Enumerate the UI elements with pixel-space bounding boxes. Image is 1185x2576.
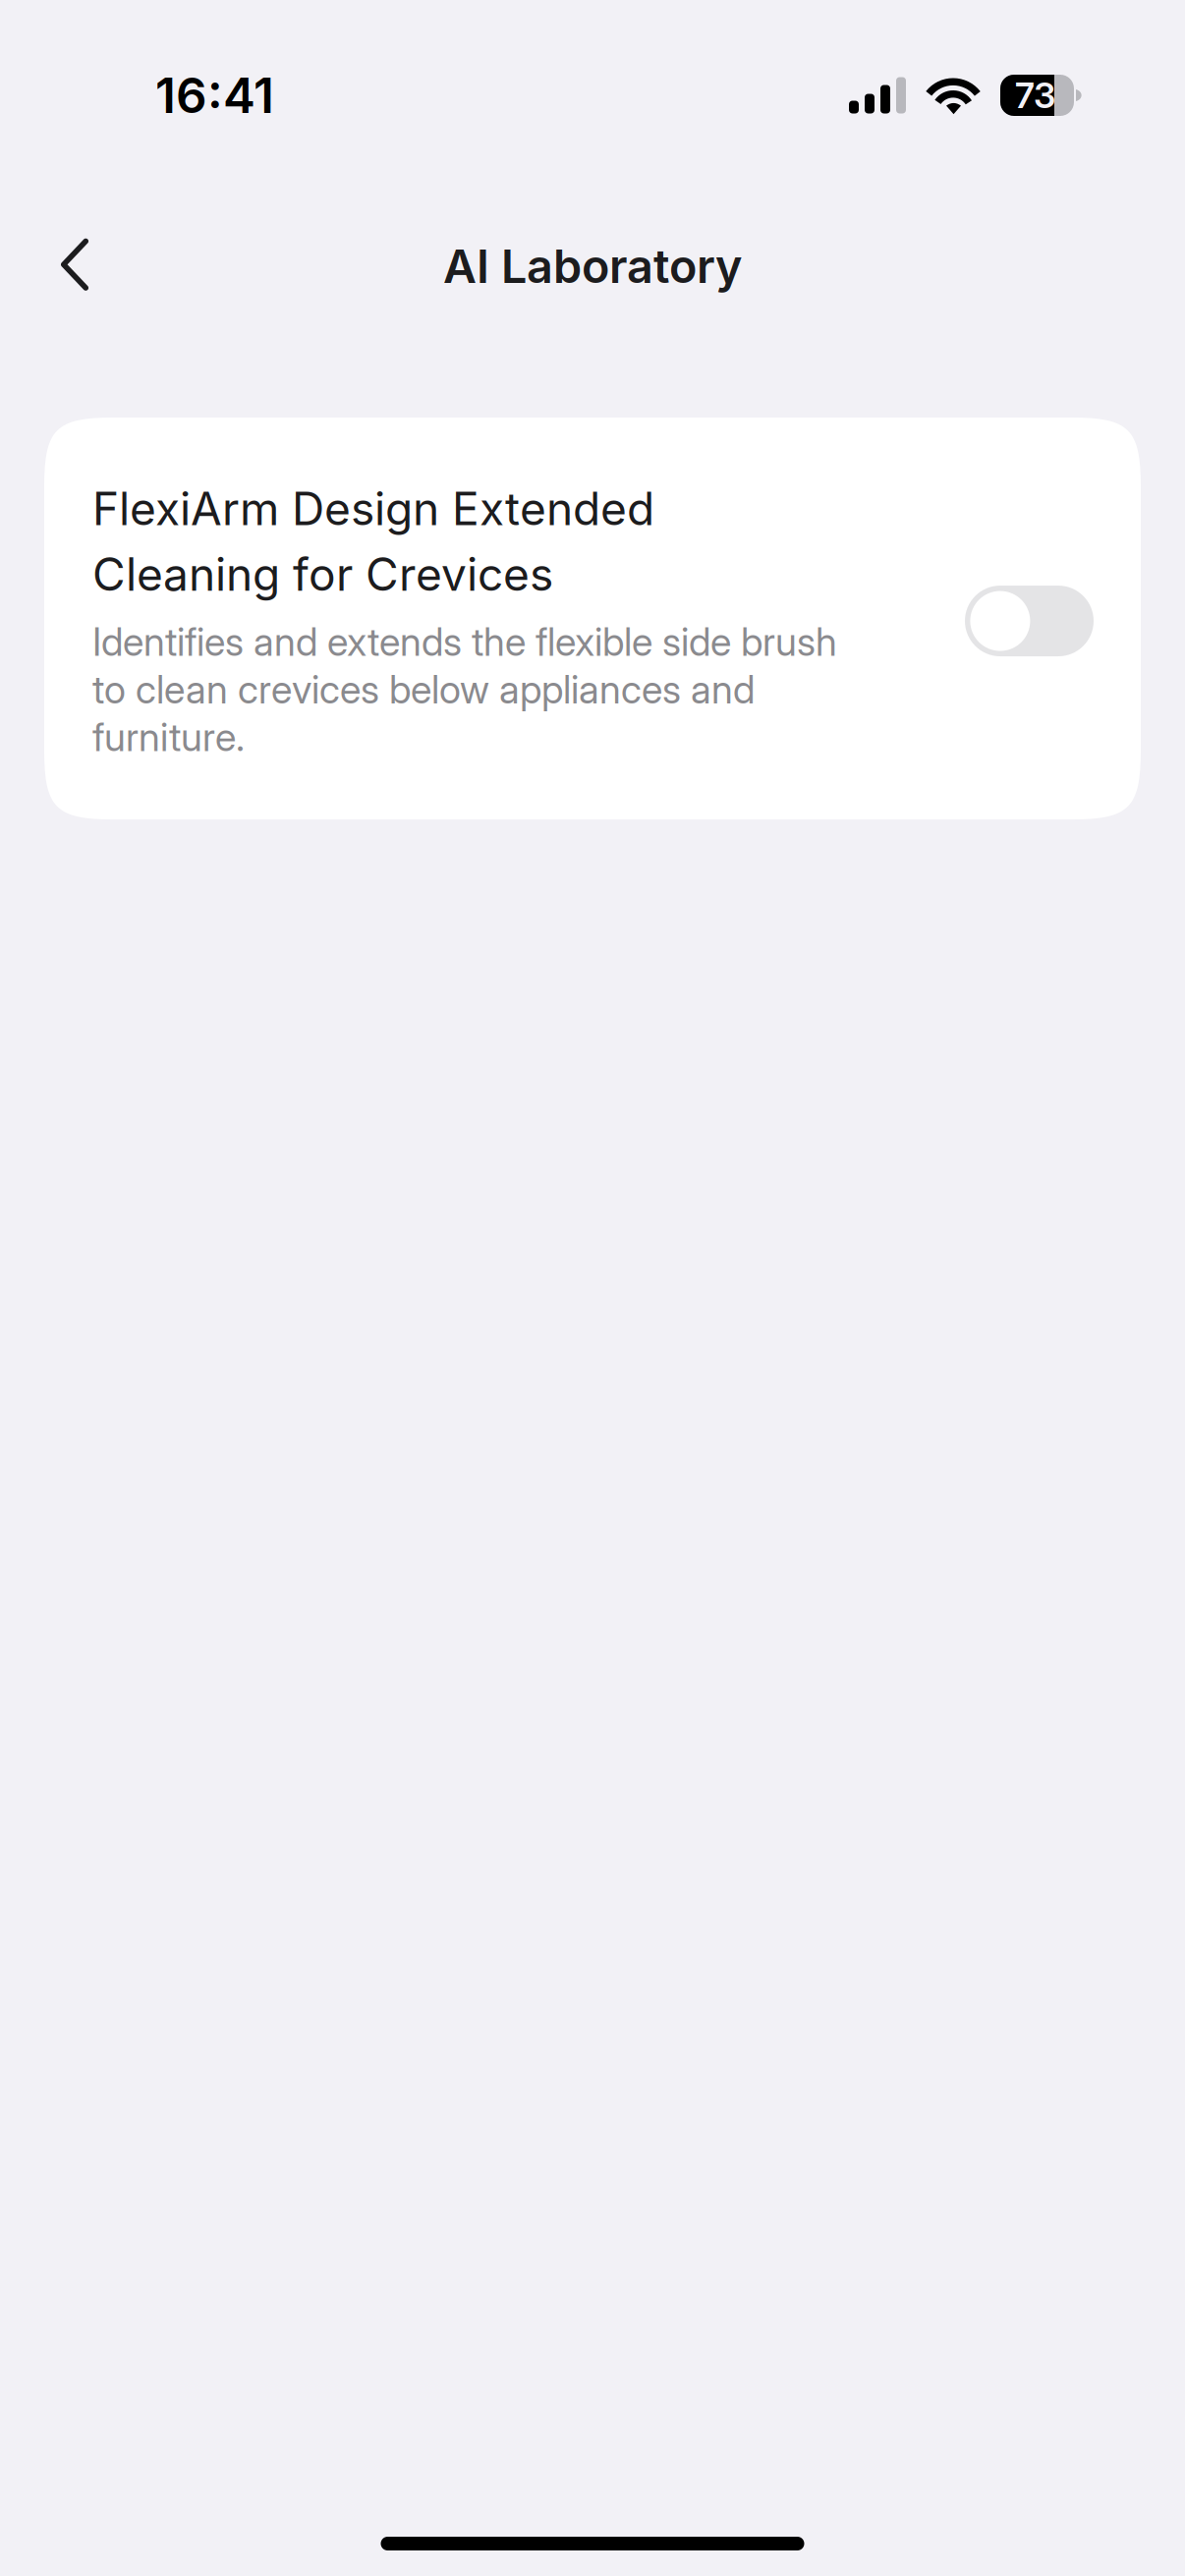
staticText: 73 xyxy=(1015,74,1055,117)
button[interactable]: Back xyxy=(57,219,151,313)
staticText: FlexiArm Design Extended Cleaning for Cr… xyxy=(92,481,654,602)
staticText: AI Laboratory xyxy=(443,239,742,294)
staticText: Identifies and extends the flexible side… xyxy=(92,618,837,761)
staticText: 16:41 xyxy=(155,66,274,125)
button[interactable]: FlexiArm Design Extended Cleaning for Cr… xyxy=(965,586,1094,656)
